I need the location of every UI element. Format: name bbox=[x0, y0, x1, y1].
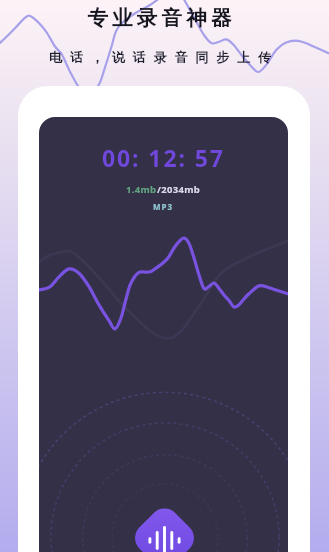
staticText: 1.4mb bbox=[126, 183, 157, 196]
staticText: 电话，说话录音同步上传 bbox=[49, 49, 279, 65]
button[interactable]: Record bbox=[135, 508, 194, 552]
staticText: MP3 bbox=[153, 201, 174, 212]
staticText: /2034mb bbox=[157, 183, 201, 196]
staticText: 00: 12: 57 bbox=[102, 142, 225, 173]
staticText: 专业录音神器 bbox=[87, 5, 236, 31]
